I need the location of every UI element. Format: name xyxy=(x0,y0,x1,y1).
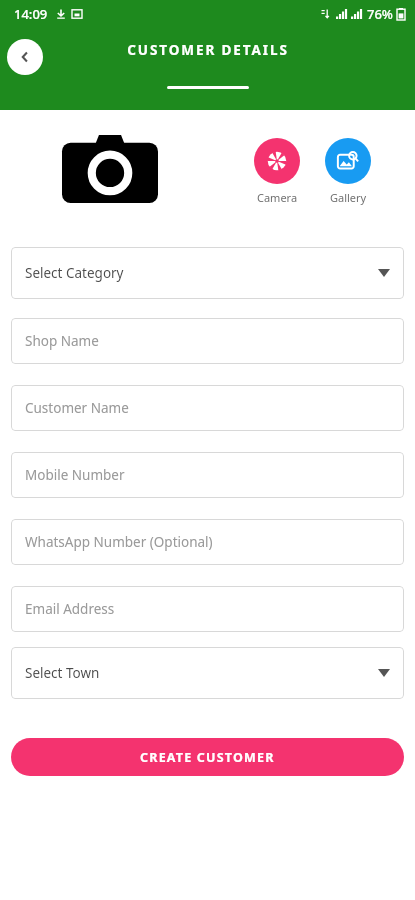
button[interactable]: CREATE CUSTOMER xyxy=(11,738,404,776)
button[interactable]: Back xyxy=(7,39,43,75)
staticText: Select Town xyxy=(25,664,378,682)
button[interactable]: Email Address xyxy=(11,586,404,632)
staticText: Gallery xyxy=(330,190,367,205)
staticText: Mobile Number xyxy=(25,466,125,484)
staticText: Customer Name xyxy=(25,399,129,417)
staticText: CREATE CUSTOMER xyxy=(140,749,275,766)
button[interactable]: Gallery xyxy=(325,138,371,205)
staticText: 76% xyxy=(367,5,393,23)
staticText: Shop Name xyxy=(25,332,99,350)
button[interactable]: Customer Name xyxy=(11,385,404,431)
staticText: WhatsApp Number (Optional) xyxy=(25,533,213,551)
staticText: 14:09 xyxy=(14,5,48,23)
button[interactable]: WhatsApp Number (Optional) xyxy=(11,519,404,565)
button[interactable]: Camera xyxy=(254,138,300,205)
button[interactable]: Shop Name xyxy=(11,318,404,364)
button[interactable]: Mobile Number xyxy=(11,452,404,498)
button[interactable]: Select Town xyxy=(11,647,404,699)
button[interactable]: Select Category xyxy=(11,247,404,299)
staticText: Camera xyxy=(257,190,298,205)
staticText: CUSTOMER DETAILS xyxy=(127,41,289,59)
staticText: Select Category xyxy=(25,264,378,282)
staticText: Email Address xyxy=(25,600,115,618)
